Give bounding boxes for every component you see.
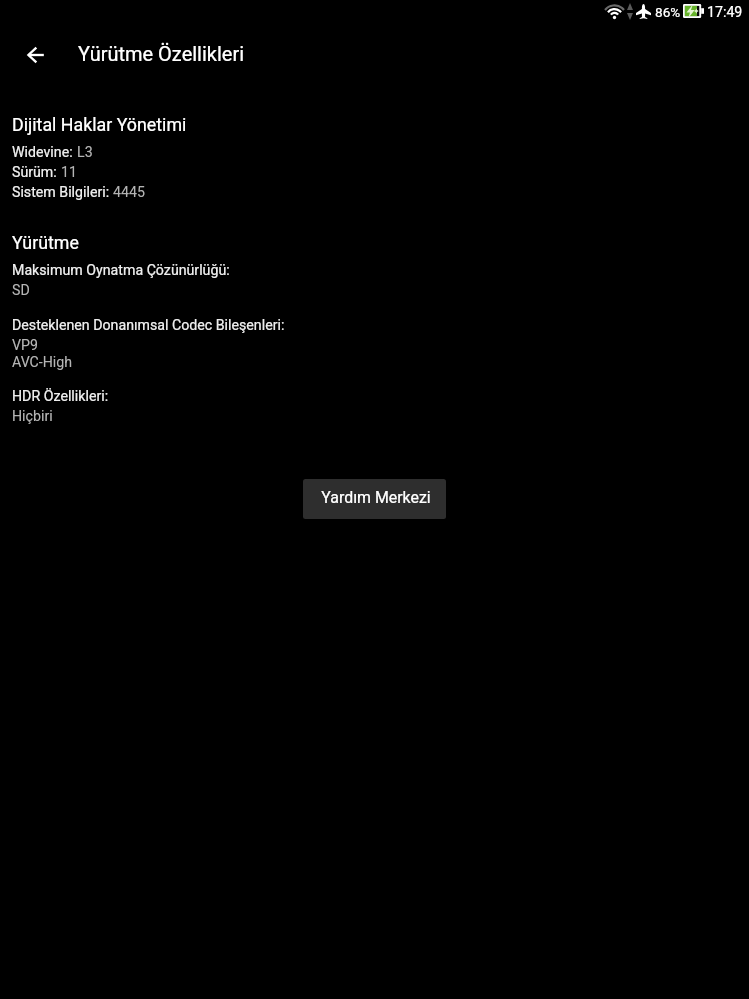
staticText: Widevine: [12, 144, 77, 161]
staticText: L3 [77, 144, 93, 161]
staticText: Yürütme [12, 232, 79, 253]
staticText: HDR Özellikleri: [12, 388, 109, 405]
staticText: Sürüm: [12, 164, 61, 181]
staticText: AVC-High [12, 354, 73, 371]
staticText: 11 [61, 164, 77, 181]
staticText: Yürütme Özellikleri [78, 42, 245, 65]
staticText: Desteklenen Donanımsal Codec Bileşenleri… [12, 317, 285, 334]
button[interactable]: Yardım Merkezi [303, 479, 446, 519]
staticText: Maksimum Oynatma Çözünürlüğü: [12, 262, 230, 279]
staticText: 17:49 [707, 4, 743, 21]
staticText: Hiçbiri [12, 408, 53, 425]
staticText: Sistem Bilgileri: [12, 184, 113, 201]
staticText: Dijital Haklar Yönetimi [12, 114, 187, 135]
staticText: SD [12, 282, 30, 299]
staticText: 4445 [113, 184, 145, 201]
staticText: Yardım Merkezi [321, 488, 431, 507]
staticText: 86% [655, 4, 681, 20]
button[interactable]: Back [12, 31, 60, 79]
staticText: VP9 [12, 337, 38, 354]
